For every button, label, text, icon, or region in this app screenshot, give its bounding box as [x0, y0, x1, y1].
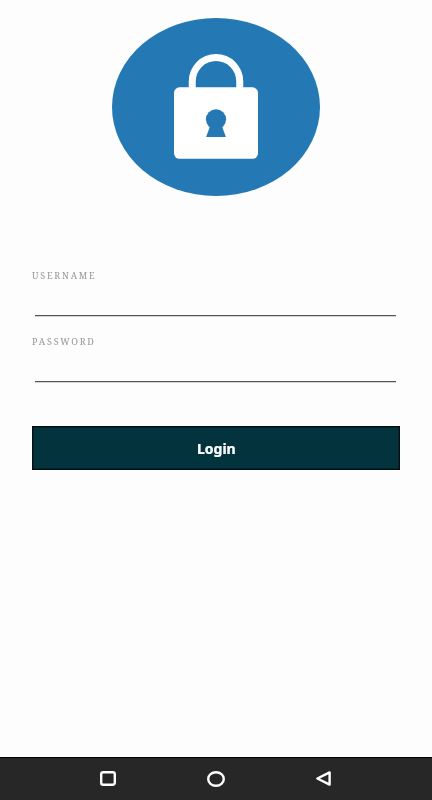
- button[interactable]: Recent apps: [54, 757, 162, 800]
- button[interactable]: USERNAME: [0, 263, 432, 317]
- button[interactable]: Back: [270, 757, 378, 800]
- button[interactable]: PASSWORD: [0, 329, 432, 383]
- staticText: USERNAME: [32, 269, 97, 281]
- staticText: Login: [197, 439, 236, 458]
- button[interactable]: Login: [32, 426, 400, 470]
- staticText: PASSWORD: [32, 335, 96, 347]
- button[interactable]: Home: [162, 757, 270, 800]
